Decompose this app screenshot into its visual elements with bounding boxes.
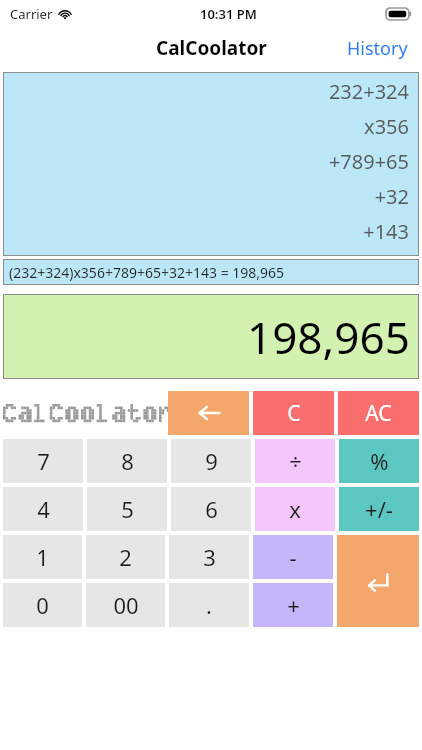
staticText: Carrier	[10, 5, 53, 23]
staticText: (232+324)x356+789+65+32+143 = 198,965	[9, 263, 285, 282]
staticText: x	[289, 494, 301, 524]
staticText: 232+324	[328, 78, 409, 105]
staticText: 198,965	[247, 307, 410, 367]
staticText: +789+65	[328, 148, 409, 175]
button[interactable]: 7	[3, 439, 83, 483]
staticText: 7	[37, 446, 50, 476]
button[interactable]: History	[333, 30, 422, 67]
staticText: 5	[121, 494, 134, 524]
staticText: x356	[364, 113, 409, 140]
button[interactable]: 6	[171, 487, 251, 531]
staticText: 6	[205, 494, 218, 524]
staticText: %	[370, 446, 389, 476]
button[interactable]: 8	[87, 439, 167, 483]
button[interactable]: Backspace	[168, 391, 249, 435]
staticText: 9	[205, 446, 218, 476]
button[interactable]: x	[255, 487, 335, 531]
staticText: -	[289, 542, 297, 572]
button[interactable]: %	[339, 439, 419, 483]
button[interactable]: ÷	[255, 439, 335, 483]
button[interactable]: +	[253, 583, 333, 627]
staticText: 10:31 PM	[200, 5, 257, 23]
button[interactable]: .	[169, 583, 249, 627]
button[interactable]: 0	[3, 583, 82, 627]
button[interactable]: 2	[86, 535, 165, 579]
button[interactable]: 3	[169, 535, 249, 579]
staticText: History	[347, 36, 408, 61]
staticText: 0	[36, 590, 49, 620]
button[interactable]: 1	[3, 535, 82, 579]
staticText: 4	[37, 494, 50, 524]
button[interactable]: AC	[338, 391, 419, 435]
staticText: 00	[113, 590, 139, 620]
button[interactable]: 9	[171, 439, 251, 483]
button[interactable]: C	[253, 391, 334, 435]
staticText: +143	[363, 218, 409, 245]
button[interactable]: 4	[3, 487, 83, 531]
staticText: +32	[374, 183, 409, 210]
staticText: 8	[121, 446, 134, 476]
button[interactable]: Enter	[337, 535, 419, 627]
button[interactable]: 00	[86, 583, 165, 627]
staticText: CalCoolator	[156, 35, 267, 61]
staticText: 3	[203, 542, 216, 572]
button[interactable]: 5	[87, 487, 167, 531]
staticText: +/-	[365, 494, 393, 524]
staticText: C	[287, 399, 301, 428]
staticText: 1	[36, 542, 49, 572]
staticText: .	[206, 590, 212, 620]
staticText: 2	[119, 542, 132, 572]
staticText: ÷	[289, 446, 302, 476]
staticText: +	[287, 590, 300, 620]
button[interactable]: +/-	[339, 487, 419, 531]
staticText: AC	[365, 399, 392, 428]
button[interactable]: -	[253, 535, 333, 579]
